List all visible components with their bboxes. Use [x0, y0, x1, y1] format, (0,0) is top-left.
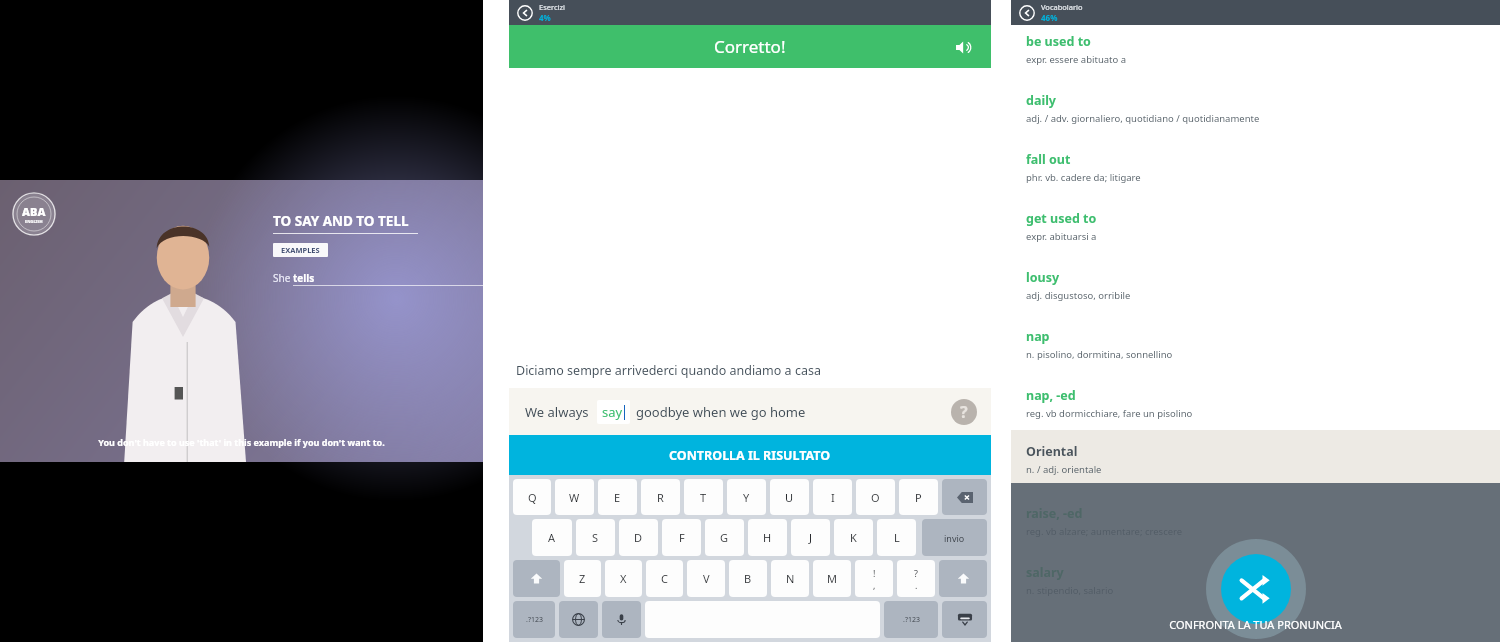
- staticText: get used to: [1026, 210, 1097, 227]
- staticText: ?: [914, 567, 918, 579]
- button[interactable]: !: [855, 560, 893, 597]
- button[interactable]: F: [662, 519, 701, 556]
- button[interactable]: J: [791, 519, 830, 556]
- button[interactable]: Play audio: [951, 35, 975, 59]
- button[interactable]: X: [605, 560, 642, 597]
- button[interactable]: M: [813, 560, 851, 597]
- button[interactable]: Shift: [513, 560, 560, 597]
- button[interactable]: W: [555, 479, 594, 515]
- staticText: Vocabolario: [1041, 2, 1083, 12]
- button[interactable]: B: [729, 560, 767, 597]
- staticText: salary: [1026, 564, 1064, 581]
- staticText: ?: [960, 401, 968, 423]
- staticText: reg. vb dormicchiare, fare un pisolino: [1026, 407, 1193, 420]
- button[interactable]: Oriental: [1011, 430, 1500, 483]
- button[interactable]: Confronta la tua pronuncia: [1206, 539, 1306, 639]
- button[interactable]: Z: [564, 560, 601, 597]
- button[interactable]: L: [877, 519, 916, 556]
- button[interactable]: Shift: [939, 560, 987, 597]
- button[interactable]: .?123: [884, 601, 938, 638]
- button[interactable]: Back to Vocabolario: [1011, 0, 1500, 25]
- button[interactable]: Voice input: [602, 601, 641, 638]
- staticText: Diciamo sempre arrivederci quando andiam…: [516, 362, 821, 379]
- staticText: lousy: [1026, 269, 1060, 286]
- button[interactable]: V: [687, 560, 725, 597]
- button[interactable]: K: [834, 519, 873, 556]
- button[interactable]: .?123: [513, 601, 555, 638]
- staticText: ABA: [22, 204, 46, 219]
- staticText: A: [548, 530, 556, 545]
- button[interactable]: S: [576, 519, 615, 556]
- button[interactable]: T: [684, 479, 723, 515]
- staticText: She: [273, 271, 293, 285]
- staticText: P: [915, 490, 922, 505]
- staticText: L: [894, 530, 900, 545]
- button[interactable]: N: [771, 560, 809, 597]
- button[interactable]: Back: [517, 5, 533, 21]
- staticText: invio: [944, 532, 965, 544]
- button[interactable]: nap: [1011, 328, 1500, 361]
- button[interactable]: Back: [1019, 5, 1035, 21]
- staticText: R: [657, 490, 664, 505]
- staticText: say: [602, 403, 623, 421]
- staticText: be used to: [1026, 33, 1091, 50]
- staticText: Y: [743, 490, 750, 505]
- staticText: You don't have to use 'that' in this exa…: [98, 436, 385, 448]
- staticText: Esercizi: [539, 2, 565, 12]
- staticText: V: [703, 571, 710, 586]
- button[interactable]: O: [856, 479, 895, 515]
- staticText: tells: [293, 271, 315, 285]
- button[interactable]: Hide keyboard: [942, 601, 987, 638]
- button[interactable]: D: [619, 519, 658, 556]
- button[interactable]: G: [705, 519, 744, 556]
- button[interactable]: Help: [951, 399, 977, 425]
- button[interactable]: Y: [727, 479, 766, 515]
- button[interactable]: ?: [897, 560, 935, 597]
- button[interactable]: P: [899, 479, 938, 515]
- staticText: E: [614, 490, 621, 505]
- staticText: phr. vb. cadere da; litigare: [1026, 171, 1141, 184]
- staticText: .: [915, 579, 918, 591]
- button[interactable]: Back to Esercizi: [509, 0, 991, 25]
- staticText: Oriental: [1026, 443, 1078, 460]
- button[interactable]: Backspace: [942, 479, 987, 515]
- button[interactable]: R: [641, 479, 680, 515]
- staticText: G: [720, 530, 729, 545]
- staticText: TO SAY AND TO TELL: [273, 212, 409, 230]
- staticText: Z: [579, 571, 586, 586]
- staticText: Q: [528, 490, 537, 505]
- button[interactable]: Q: [513, 479, 551, 515]
- staticText: EXAMPLES: [281, 245, 320, 255]
- button[interactable]: get used to: [1011, 210, 1500, 243]
- staticText: X: [620, 571, 627, 586]
- staticText: I: [831, 490, 835, 505]
- button[interactable]: A: [532, 519, 572, 556]
- button[interactable]: Corretto!: [509, 25, 991, 68]
- button[interactable]: H: [748, 519, 787, 556]
- button[interactable]: nap, -ed: [1011, 387, 1500, 420]
- button[interactable]: lousy: [1011, 269, 1500, 302]
- button[interactable]: daily: [1011, 92, 1500, 125]
- button[interactable]: be used to: [1011, 33, 1500, 66]
- button[interactable]: fall out: [1011, 151, 1500, 184]
- staticText: F: [679, 530, 685, 545]
- staticText: nap: [1026, 328, 1050, 345]
- staticText: N: [786, 571, 795, 586]
- staticText: nap, -ed: [1026, 387, 1076, 404]
- button[interactable]: C: [646, 560, 683, 597]
- staticText: K: [850, 530, 857, 545]
- button[interactable]: We always: [509, 388, 991, 435]
- staticText: CONTROLLA IL RISULTATO: [669, 447, 831, 464]
- button[interactable]: invio: [922, 519, 987, 556]
- button[interactable]: I: [813, 479, 852, 515]
- staticText: ,: [873, 579, 876, 591]
- staticText: T: [700, 490, 707, 505]
- button[interactable]: Change language: [559, 601, 598, 638]
- staticText: C: [661, 571, 668, 586]
- staticText: raise, -ed: [1026, 505, 1083, 522]
- button[interactable]: E: [598, 479, 637, 515]
- button[interactable]: CONTROLLA IL RISULTATO: [509, 435, 991, 475]
- button[interactable]: U: [770, 479, 809, 515]
- staticText: J: [809, 530, 813, 545]
